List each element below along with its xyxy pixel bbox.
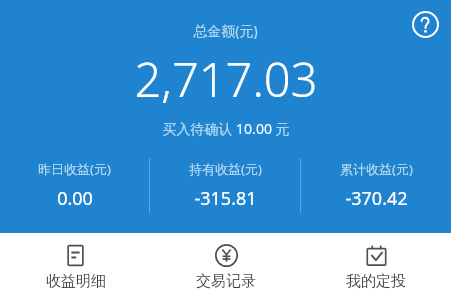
staticText: 交易记录 bbox=[196, 272, 256, 291]
staticText: -370.42 bbox=[345, 186, 408, 211]
button[interactable]: Transaction records bbox=[151, 233, 301, 299]
staticText: -315.81 bbox=[194, 186, 257, 211]
staticText: 总金额(元) bbox=[193, 21, 258, 40]
staticText: 收益明细 bbox=[46, 272, 106, 291]
button[interactable]: 昨日收益(元) bbox=[0, 151, 149, 225]
staticText: 0.00 bbox=[57, 186, 93, 211]
staticText: 昨日收益(元) bbox=[38, 160, 111, 178]
button[interactable]: Help bbox=[408, 7, 442, 41]
button[interactable]: Income details bbox=[0, 233, 151, 299]
button[interactable]: My plans bbox=[301, 233, 451, 299]
staticText: 持有收益(元) bbox=[189, 160, 262, 178]
staticText: 买入待确认 10.00 元 bbox=[162, 119, 290, 138]
staticText: 累计收益(元) bbox=[340, 160, 413, 178]
staticText: 我的定投 bbox=[346, 272, 406, 291]
button[interactable]: 持有收益(元) bbox=[150, 151, 300, 225]
staticText: 2,717.03 bbox=[134, 47, 318, 111]
button[interactable]: 累计收益(元) bbox=[301, 151, 451, 225]
